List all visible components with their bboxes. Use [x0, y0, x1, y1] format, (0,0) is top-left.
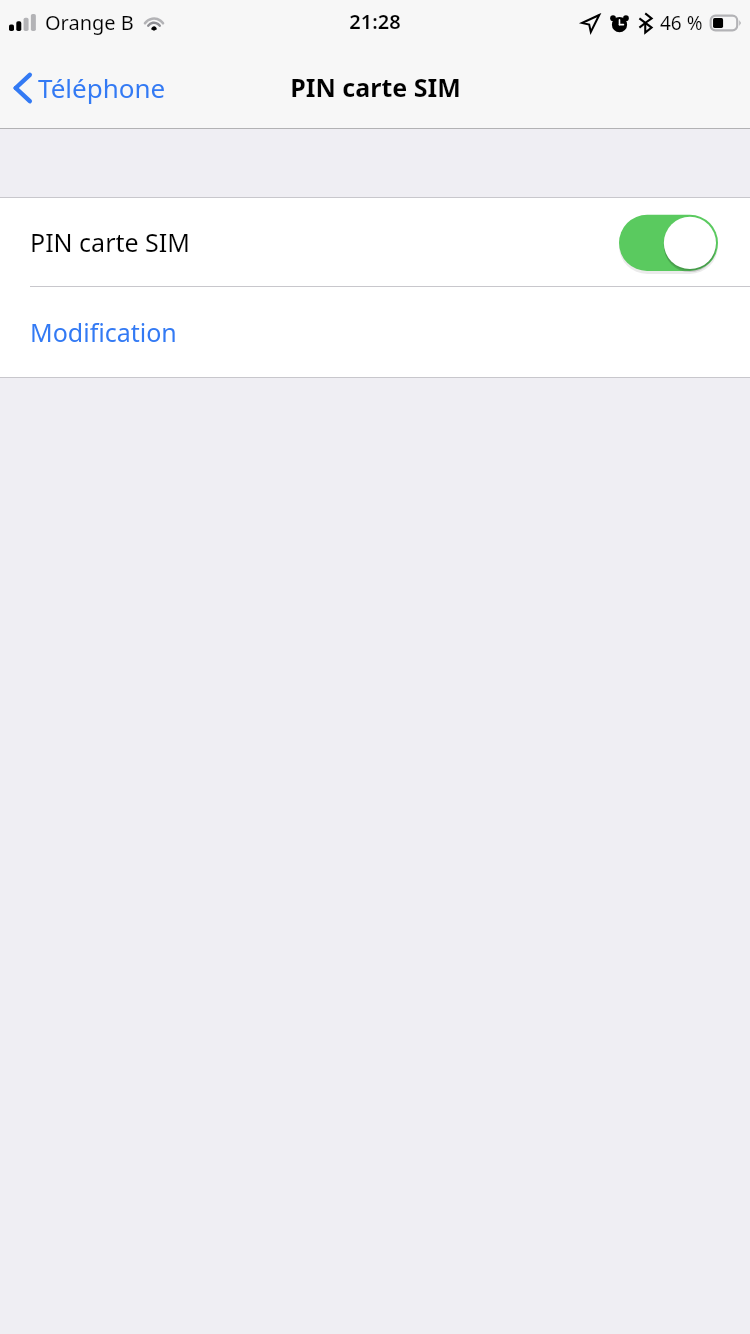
staticText: Orange B — [45, 9, 134, 36]
button[interactable]: Téléphone — [8, 64, 172, 111]
staticText: Téléphone — [38, 70, 166, 105]
staticText: PIN carte SIM — [30, 225, 619, 259]
staticText: 46 % — [660, 10, 703, 36]
staticText: PIN carte SIM — [290, 70, 461, 104]
button[interactable]: PIN carte SIM — [0, 198, 750, 286]
staticText: Modification — [30, 315, 177, 349]
staticText: 21:28 — [349, 8, 401, 35]
button[interactable]: Modification — [0, 287, 750, 377]
button[interactable]: PIN carte SIM activé — [619, 214, 718, 271]
